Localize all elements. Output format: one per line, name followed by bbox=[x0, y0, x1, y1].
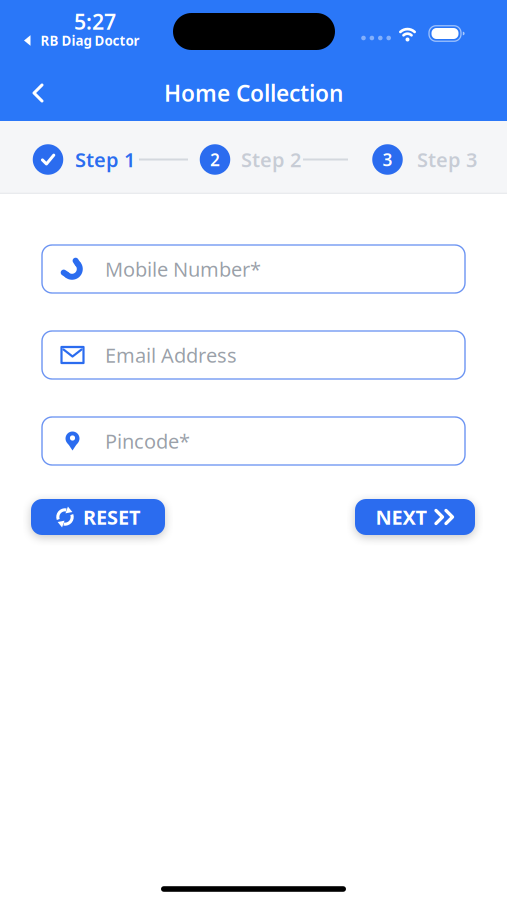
staticText: RB Diag Doctor bbox=[40, 32, 139, 49]
button[interactable]: Email Address bbox=[42, 331, 465, 379]
staticText: NEXT bbox=[375, 504, 427, 530]
staticText: 2 bbox=[210, 148, 220, 171]
staticText: Pincode* bbox=[105, 428, 190, 454]
button[interactable]: Mobile Number* bbox=[42, 245, 465, 293]
staticText: Email Address bbox=[105, 342, 237, 368]
staticText: Mobile Number* bbox=[105, 256, 261, 282]
staticText: Step 3 bbox=[417, 146, 477, 173]
staticText: 3 bbox=[382, 148, 392, 171]
button[interactable]: Pincode* bbox=[42, 417, 465, 465]
button[interactable]: NEXT bbox=[355, 499, 475, 535]
button[interactable]: Back bbox=[21, 73, 61, 112]
staticText: RESET bbox=[83, 504, 141, 530]
staticText: 5:27 bbox=[74, 7, 116, 36]
staticText: Home Collection bbox=[164, 78, 343, 108]
staticText: Step 2 bbox=[241, 146, 301, 173]
button[interactable]: RESET bbox=[31, 499, 165, 535]
staticText: Step 1 bbox=[75, 146, 135, 173]
